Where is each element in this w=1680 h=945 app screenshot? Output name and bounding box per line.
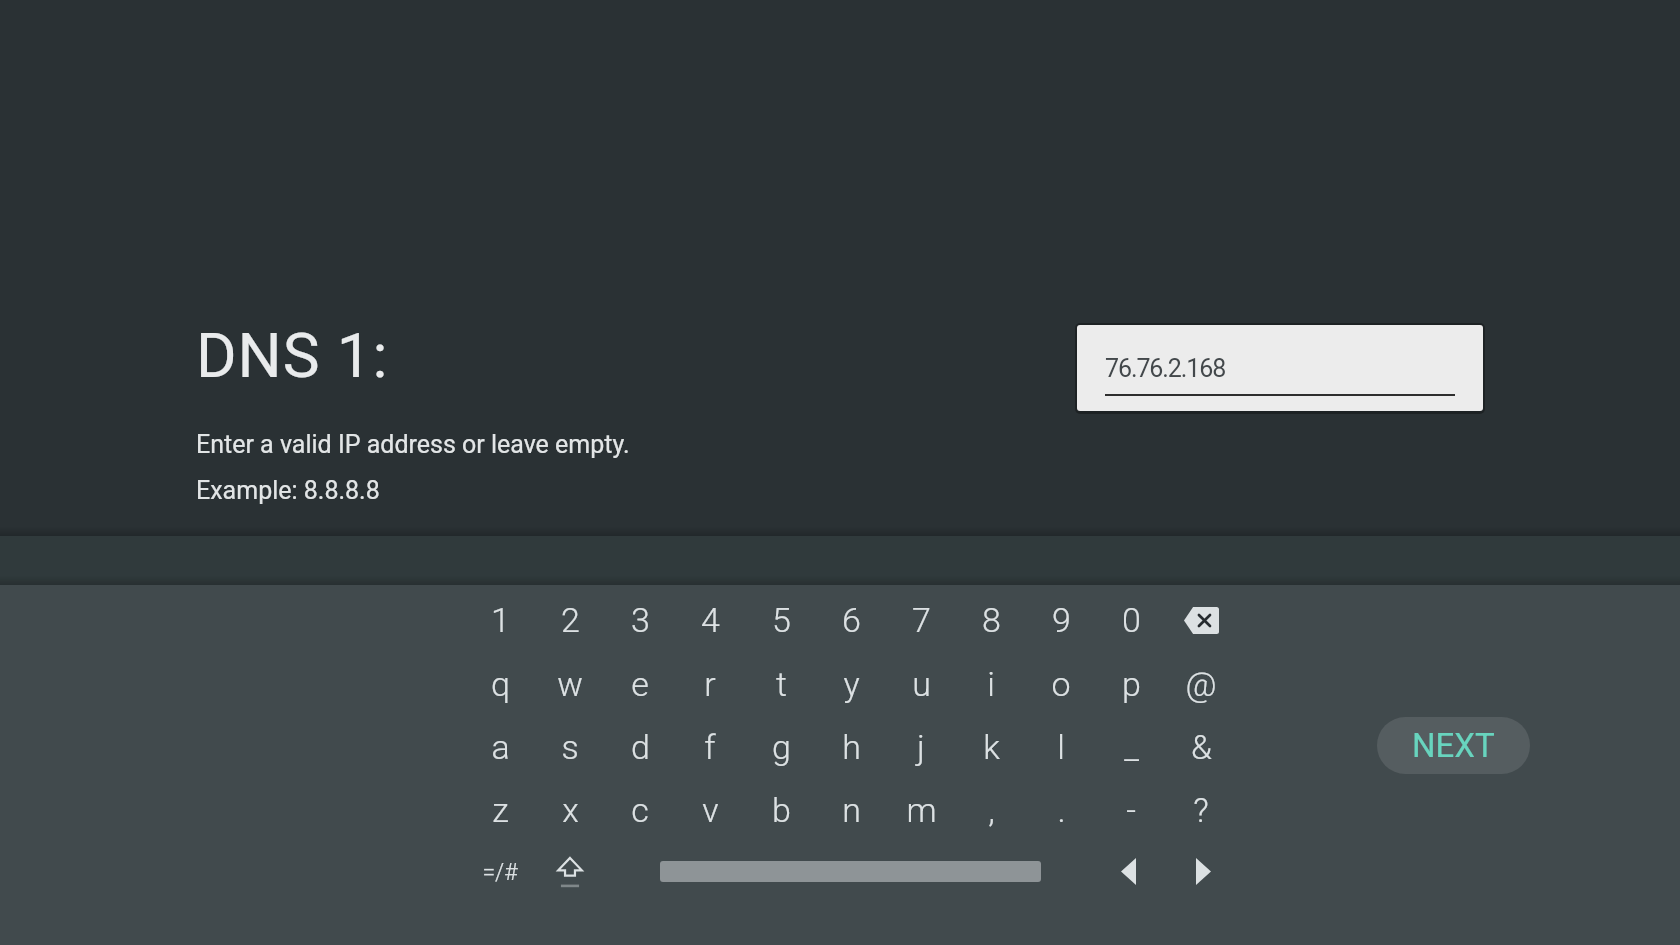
button[interactable]: 6 xyxy=(819,591,883,649)
staticText: 8 xyxy=(982,600,1001,640)
staticText: q xyxy=(491,664,510,704)
staticText: g xyxy=(772,727,791,767)
staticText: NEXT xyxy=(1412,726,1495,765)
button[interactable]: 76.76.2.168 xyxy=(1077,325,1483,411)
staticText: l xyxy=(1057,727,1065,767)
staticText: 9 xyxy=(1052,600,1071,640)
button[interactable]: 4 xyxy=(678,591,742,649)
staticText: b xyxy=(772,790,791,830)
button[interactable]: g xyxy=(749,718,813,776)
staticText: & xyxy=(1191,727,1212,767)
button[interactable]: 8 xyxy=(959,591,1023,649)
button[interactable]: q xyxy=(468,655,532,713)
staticText: ? xyxy=(1193,790,1209,830)
staticText: @ xyxy=(1185,664,1217,704)
button[interactable]: y xyxy=(819,655,883,713)
button[interactable]: n xyxy=(819,781,883,839)
staticText: v xyxy=(702,790,719,830)
button[interactable]: o xyxy=(1029,655,1093,713)
staticText: Enter a valid IP address or leave empty. xyxy=(196,430,630,459)
staticText: y xyxy=(843,664,860,704)
staticText: u xyxy=(912,664,931,704)
staticText: , xyxy=(988,790,995,830)
button[interactable]: =/# xyxy=(468,843,532,901)
staticText: k xyxy=(983,727,1000,767)
button[interactable]: @ xyxy=(1169,655,1233,713)
button[interactable]: x xyxy=(538,781,602,839)
staticText: =/# xyxy=(482,859,518,886)
button[interactable]: c xyxy=(608,781,672,839)
staticText: a xyxy=(491,727,510,767)
staticText: f xyxy=(704,727,716,767)
button[interactable]: f xyxy=(678,718,742,776)
staticText: 2 xyxy=(561,600,580,640)
button[interactable]: 9 xyxy=(1029,591,1093,649)
staticText: Example: 8.8.8.8 xyxy=(196,476,380,505)
button[interactable]: NEXT xyxy=(1377,717,1530,774)
staticText: o xyxy=(1051,664,1071,704)
staticText: s xyxy=(561,727,579,767)
button[interactable]: Move cursor right xyxy=(1171,842,1235,900)
button[interactable]: z xyxy=(468,781,532,839)
staticText: 76.76.2.168 xyxy=(1105,354,1226,383)
staticText: 6 xyxy=(842,600,861,640)
button[interactable]: v xyxy=(678,781,742,839)
button[interactable]: u xyxy=(889,655,953,713)
staticText: n xyxy=(842,790,861,830)
staticText: r xyxy=(704,664,716,704)
button[interactable]: b xyxy=(749,781,813,839)
button[interactable]: t xyxy=(749,655,813,713)
button[interactable]: 2 xyxy=(538,591,602,649)
staticText: c xyxy=(631,790,649,830)
staticText: x xyxy=(562,790,579,830)
button[interactable]: p xyxy=(1099,655,1163,713)
button[interactable]: a xyxy=(468,718,532,776)
staticText: z xyxy=(492,790,509,830)
button[interactable]: Move cursor left xyxy=(1096,842,1160,900)
button[interactable]: d xyxy=(608,718,672,776)
button[interactable]: s xyxy=(538,718,602,776)
staticText: 3 xyxy=(631,600,650,640)
staticText: t xyxy=(776,664,787,704)
button[interactable]: r xyxy=(678,655,742,713)
button[interactable]: Shift xyxy=(538,843,602,901)
button[interactable]: 0 xyxy=(1099,591,1163,649)
button[interactable]: k xyxy=(959,718,1023,776)
staticText: e xyxy=(631,664,649,704)
staticText: j xyxy=(917,727,925,767)
button[interactable]: 3 xyxy=(608,591,672,649)
button[interactable]: l xyxy=(1029,718,1093,776)
staticText: h xyxy=(842,727,861,767)
button[interactable]: - xyxy=(1099,781,1163,839)
button[interactable]: ? xyxy=(1169,781,1233,839)
button[interactable]: e xyxy=(608,655,672,713)
button[interactable]: j xyxy=(889,718,953,776)
button[interactable]: _ xyxy=(1099,718,1163,776)
button[interactable]: 1 xyxy=(468,591,532,649)
staticText: m xyxy=(906,790,937,830)
staticText: d xyxy=(631,727,650,767)
button[interactable]: w xyxy=(538,655,602,713)
button[interactable]: & xyxy=(1169,718,1233,776)
staticText: 7 xyxy=(912,600,931,640)
staticText: _ xyxy=(1124,727,1139,767)
staticText: i xyxy=(987,664,995,704)
staticText: - xyxy=(1126,790,1136,830)
staticText: w xyxy=(557,664,583,704)
button[interactable]: Backspace xyxy=(1169,591,1233,649)
staticText: DNS 1: xyxy=(196,319,389,392)
staticText: 1 xyxy=(491,600,510,640)
button[interactable]: i xyxy=(959,655,1023,713)
staticText: 0 xyxy=(1122,600,1141,640)
button[interactable]: m xyxy=(889,781,953,839)
staticText: 5 xyxy=(772,600,791,640)
button[interactable]: 7 xyxy=(889,591,953,649)
button[interactable]: . xyxy=(1029,781,1093,839)
button[interactable]: , xyxy=(959,781,1023,839)
staticText: 4 xyxy=(701,600,720,640)
staticText: . xyxy=(1057,790,1066,830)
button[interactable]: h xyxy=(819,718,883,776)
staticText: p xyxy=(1122,664,1141,704)
button[interactable]: 5 xyxy=(749,591,813,649)
